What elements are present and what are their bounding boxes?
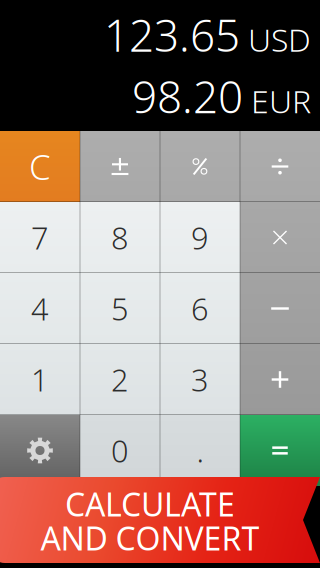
button[interactable]: 7 xyxy=(0,202,80,273)
button[interactable]: 1 xyxy=(0,344,80,415)
button[interactable]: Equals xyxy=(240,415,320,486)
button[interactable]: 4 xyxy=(0,273,80,344)
staticText: USD xyxy=(248,18,311,61)
staticText: 4 xyxy=(31,288,49,329)
staticText: 6 xyxy=(191,288,209,329)
staticText: 8 xyxy=(111,217,129,258)
staticText: 7 xyxy=(31,217,49,258)
staticText: 98.20 xyxy=(132,67,243,125)
staticText: 3 xyxy=(191,359,209,400)
button[interactable]: Settings xyxy=(0,415,80,486)
button[interactable]: Plus xyxy=(240,344,320,415)
button[interactable]: Percent xyxy=(160,131,240,202)
staticText: 2 xyxy=(111,359,129,400)
button[interactable]: 8 xyxy=(80,202,160,273)
staticText: AND CONVERT xyxy=(40,517,259,559)
staticText: 0 xyxy=(111,430,129,471)
staticText: 123.65 xyxy=(104,6,240,64)
button[interactable]: 9 xyxy=(160,202,240,273)
staticText: 1 xyxy=(31,359,49,400)
staticText: . xyxy=(196,430,203,471)
button[interactable]: Minus xyxy=(240,273,320,344)
button[interactable]: 6 xyxy=(160,273,240,344)
button[interactable]: 2 xyxy=(80,344,160,415)
button[interactable]: 5 xyxy=(80,273,160,344)
button[interactable]: C xyxy=(0,131,80,202)
button[interactable]: Divide xyxy=(240,131,320,202)
button[interactable]: . xyxy=(160,415,240,486)
button[interactable]: Plus or minus xyxy=(80,131,160,202)
staticText: CALCULATE xyxy=(65,483,235,525)
staticText: 9 xyxy=(191,217,209,258)
staticText: EUR xyxy=(251,80,311,122)
staticText: 5 xyxy=(111,288,129,329)
staticText: C xyxy=(29,143,51,189)
button[interactable]: Multiply xyxy=(240,202,320,273)
button[interactable]: 0 xyxy=(80,415,160,486)
button[interactable]: 3 xyxy=(160,344,240,415)
button[interactable]: CALCULATE xyxy=(0,477,320,563)
